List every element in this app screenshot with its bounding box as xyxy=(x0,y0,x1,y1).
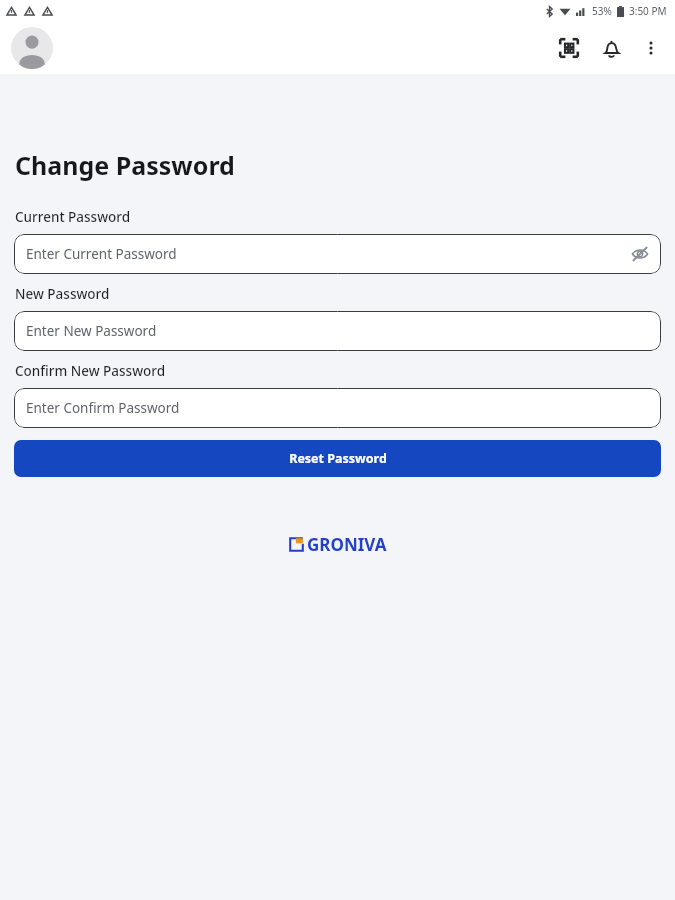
staticText: Confirm New Password xyxy=(15,362,166,380)
staticText: Change Password xyxy=(15,148,235,182)
staticText: GRONIVA xyxy=(307,533,387,556)
staticText: Enter New Password xyxy=(26,322,157,340)
staticText: Reset Password xyxy=(289,450,387,467)
staticText: Enter Current Password xyxy=(26,245,177,263)
button[interactable]: Enter Confirm Password xyxy=(14,388,661,428)
button[interactable]: More options xyxy=(639,36,663,60)
button[interactable]: Notifications xyxy=(597,34,625,62)
button[interactable]: Show password xyxy=(629,243,651,265)
staticText: 53% xyxy=(592,4,612,18)
staticText: New Password xyxy=(15,285,110,303)
button[interactable]: Enter Current Password xyxy=(14,234,661,274)
button[interactable]: Scan QR code xyxy=(555,34,583,62)
button[interactable]: Profile xyxy=(11,27,53,69)
button[interactable]: Reset Password xyxy=(14,440,661,477)
staticText: Current Password xyxy=(15,208,131,226)
staticText: Enter Confirm Password xyxy=(26,399,180,417)
staticText: 3:50 PM xyxy=(629,4,667,18)
button[interactable]: Enter New Password xyxy=(14,311,661,351)
